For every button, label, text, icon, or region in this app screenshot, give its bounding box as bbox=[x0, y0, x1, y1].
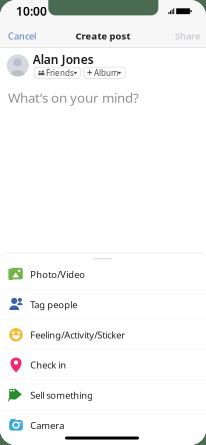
staticText: Camera bbox=[30, 419, 64, 432]
staticText: Cancel bbox=[8, 30, 36, 42]
button[interactable]: Album bbox=[84, 67, 125, 78]
button[interactable]: Tag people bbox=[0, 289, 206, 320]
button[interactable]: Camera bbox=[0, 410, 206, 440]
staticText: Alan Jones bbox=[33, 51, 94, 67]
staticText: What’s on your mind? bbox=[8, 89, 139, 106]
button[interactable]: Photo/Video bbox=[0, 259, 206, 289]
staticText: Check in bbox=[30, 359, 66, 371]
staticText: Album bbox=[94, 68, 118, 78]
button[interactable]: Share bbox=[160, 26, 204, 46]
button[interactable]: Friends bbox=[34, 67, 80, 78]
staticText: Friends bbox=[46, 68, 74, 78]
staticText: Create post bbox=[75, 30, 130, 42]
button[interactable]: Sell something bbox=[0, 380, 206, 410]
staticText: Feeling/Activity/Sticker bbox=[30, 329, 125, 341]
button[interactable]: Check in bbox=[0, 350, 206, 380]
staticText: Share bbox=[175, 30, 200, 42]
staticText: Tag people bbox=[30, 298, 77, 311]
staticText: Photo/Video bbox=[30, 268, 85, 281]
staticText: Sell something bbox=[30, 389, 93, 401]
staticText: 10:00 bbox=[16, 3, 47, 19]
button[interactable]: Feeling/Activity/Sticker bbox=[0, 320, 206, 350]
button[interactable]: Cancel bbox=[2, 26, 52, 46]
